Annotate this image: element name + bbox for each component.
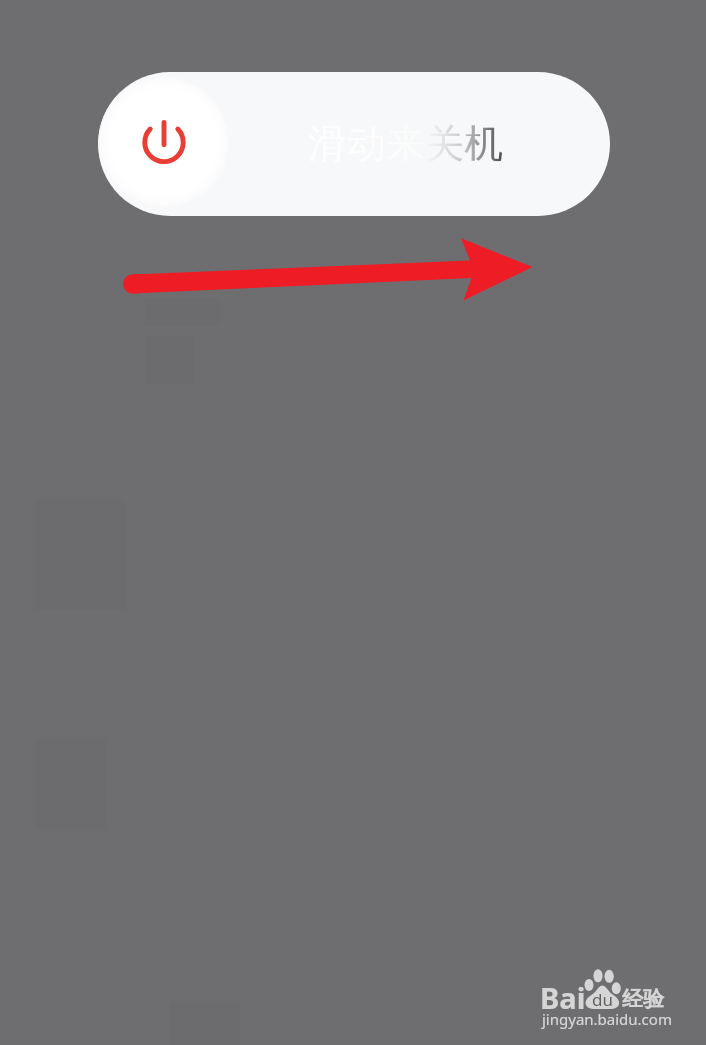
staticText: Bai — [540, 978, 586, 1017]
staticText: du — [592, 988, 613, 1011]
staticText: jingyan.baidu.com — [542, 1009, 672, 1029]
button[interactable]: Slide to power off — [98, 72, 610, 216]
staticText: 经验 — [622, 986, 664, 1012]
button[interactable]: Slide to power off — [98, 76, 230, 208]
staticText: 滑动来关机 — [308, 119, 503, 168]
